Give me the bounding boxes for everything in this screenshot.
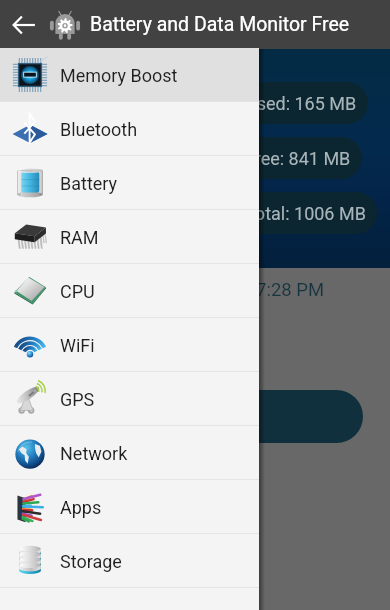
staticText: Battery bbox=[60, 173, 118, 194]
button[interactable]: Apps bbox=[0, 480, 259, 534]
staticText: 7:28 PM bbox=[256, 279, 325, 301]
button[interactable] bbox=[98, 390, 363, 443]
button[interactable]: GPS bbox=[0, 372, 259, 426]
button[interactable]: WiFi bbox=[0, 318, 259, 372]
button[interactable]: Back bbox=[0, 0, 47, 49]
button[interactable]: RAM bbox=[0, 210, 259, 264]
staticText: CPU bbox=[60, 281, 95, 302]
button[interactable]: Memory Boost bbox=[0, 48, 259, 102]
staticText: WiFi bbox=[60, 335, 95, 356]
staticText: Memory Boost bbox=[60, 65, 178, 86]
staticText: Used: 165 MB bbox=[245, 93, 357, 114]
staticText: RAM bbox=[60, 227, 99, 248]
staticText: Bluetooth bbox=[60, 119, 138, 140]
staticText: Storage bbox=[60, 551, 122, 572]
button[interactable]: Storage bbox=[0, 534, 259, 588]
staticText: Network bbox=[60, 443, 128, 464]
staticText: Total: 1006 MB bbox=[245, 203, 366, 224]
staticText: Apps bbox=[60, 497, 102, 518]
button[interactable]: Network bbox=[0, 426, 259, 480]
staticText: Free: 841 MB bbox=[245, 148, 351, 169]
staticText: GPS bbox=[60, 389, 95, 410]
button[interactable]: Battery bbox=[0, 156, 259, 210]
button[interactable]: CPU bbox=[0, 264, 259, 318]
staticText: Battery and Data Monitor Free bbox=[90, 13, 350, 36]
button[interactable]: Bluetooth bbox=[0, 102, 259, 156]
